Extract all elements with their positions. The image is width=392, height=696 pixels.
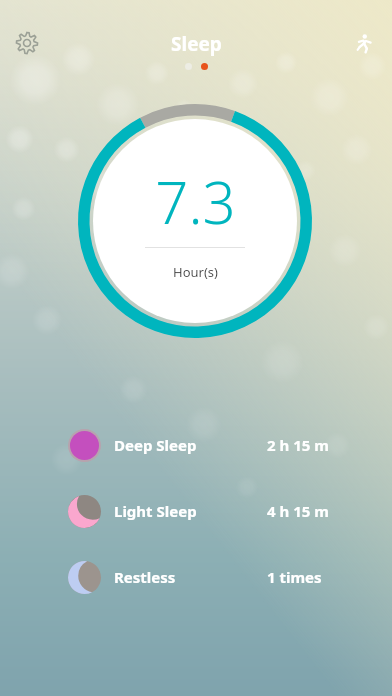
button[interactable]: Settings (10, 26, 44, 60)
staticText: Light Sleep (114, 501, 197, 521)
staticText: Hour(s) (173, 263, 218, 281)
button[interactable] (201, 63, 208, 70)
button[interactable] (185, 63, 192, 70)
button[interactable]: Light Sleep (0, 478, 392, 544)
staticText: 2 h 15 m (267, 435, 329, 455)
button[interactable]: 7.3 (78, 104, 312, 338)
staticText: Restless (114, 567, 176, 587)
button[interactable]: Restless (0, 544, 392, 610)
staticText: Sleep (171, 31, 222, 57)
button[interactable]: Activity (346, 26, 380, 60)
staticText: Deep Sleep (114, 435, 197, 455)
button[interactable]: Deep Sleep (0, 412, 392, 478)
staticText: 1 times (267, 567, 322, 587)
staticText: 7.3 (155, 162, 236, 241)
staticText: 4 h 15 m (267, 501, 329, 521)
